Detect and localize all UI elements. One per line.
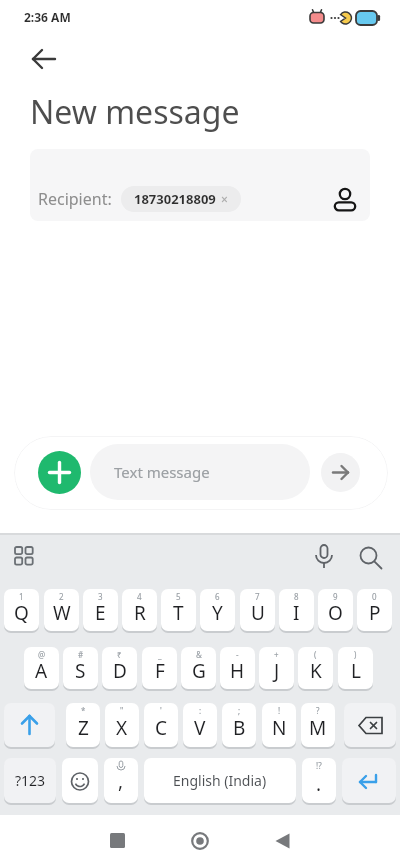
staticText: ! (278, 705, 281, 716)
button[interactable]: " (105, 703, 139, 749)
staticText: C (155, 715, 168, 741)
staticText: 9 (333, 591, 338, 602)
button[interactable] (358, 545, 384, 571)
staticText: 3 (98, 591, 103, 602)
staticText: O (328, 600, 343, 626)
button[interactable] (333, 185, 357, 212)
button[interactable]: : (183, 703, 217, 749)
staticText: ) (354, 649, 357, 660)
staticText: 6 (215, 591, 220, 602)
button[interactable]: & (181, 647, 216, 691)
button[interactable] (274, 833, 291, 849)
staticText: _ (158, 649, 162, 660)
button[interactable] (321, 453, 360, 492)
button[interactable]: # (63, 647, 98, 691)
staticText: * (81, 705, 86, 716)
button[interactable]: 8 (279, 589, 314, 633)
button[interactable]: + (259, 647, 294, 691)
staticText: G (192, 658, 206, 684)
button[interactable]: * (66, 703, 100, 749)
staticText: A (35, 658, 48, 684)
staticText: S (75, 658, 86, 684)
staticText: H (230, 658, 245, 684)
staticText: T (173, 600, 184, 626)
button[interactable]: 1 (4, 589, 39, 633)
staticText: X (116, 715, 128, 741)
staticText: ?123 (15, 771, 46, 790)
staticText: I (293, 600, 300, 626)
staticText: ₹ (117, 649, 122, 660)
button[interactable]: ) (338, 647, 373, 691)
staticText: # (78, 649, 84, 660)
staticText: ( (314, 649, 317, 660)
button[interactable]: ?123 (4, 758, 56, 805)
button[interactable] (24, 44, 64, 76)
button[interactable]: ! (262, 703, 296, 749)
button[interactable] (313, 544, 335, 571)
staticText: 0 (372, 591, 377, 602)
staticText: 4 (137, 591, 142, 602)
staticText: ; (238, 705, 241, 716)
button[interactable] (110, 833, 125, 848)
button[interactable] (191, 832, 209, 850)
button[interactable]: _ (142, 647, 177, 691)
button[interactable]: ; (222, 703, 256, 749)
staticText: , (118, 768, 124, 794)
staticText: E (95, 600, 106, 626)
button[interactable]: @ (24, 647, 59, 691)
staticText: M (309, 715, 327, 741)
staticText: R (134, 600, 146, 626)
staticText: Q (14, 600, 29, 626)
staticText: Recipient: (38, 188, 112, 210)
staticText: P (369, 600, 381, 626)
staticText: V (194, 715, 206, 741)
staticText: + (274, 649, 279, 660)
button[interactable]: ₹ (102, 647, 137, 691)
staticText: 18730218809 (134, 190, 216, 208)
staticText: !? (316, 760, 322, 771)
staticText: B (233, 715, 246, 741)
staticText: K (310, 658, 322, 684)
button[interactable]: 0 (357, 589, 392, 633)
button[interactable]: 5 (161, 589, 196, 633)
staticText: - (236, 649, 239, 660)
button[interactable]: , (104, 758, 138, 805)
button[interactable] (62, 758, 98, 805)
staticText: 2:36 AM (24, 9, 71, 25)
staticText: ' (160, 705, 162, 716)
staticText: 5 (176, 591, 181, 602)
button[interactable] (14, 546, 34, 566)
button[interactable]: 18730218809 (121, 186, 241, 212)
staticText: 8 (294, 591, 299, 602)
button[interactable] (4, 703, 55, 749)
button[interactable] (344, 703, 396, 749)
staticText: U (251, 600, 265, 626)
button[interactable]: ' (144, 703, 178, 749)
staticText: W (53, 600, 71, 626)
button[interactable]: 6 (200, 589, 235, 633)
staticText: 7 (255, 591, 260, 602)
button[interactable]: !? (302, 758, 336, 805)
button[interactable]: 7 (240, 589, 275, 633)
button[interactable] (38, 451, 81, 494)
staticText: J (274, 658, 280, 684)
button[interactable]: Text message (90, 444, 310, 500)
button[interactable]: 9 (318, 589, 353, 633)
button[interactable]: English (India) (144, 758, 296, 805)
button[interactable]: ( (298, 647, 333, 691)
staticText: Y (212, 600, 223, 626)
button[interactable]: ? (301, 703, 335, 749)
staticText: F (155, 658, 165, 684)
staticText: Z (78, 715, 89, 741)
staticText: L (351, 658, 361, 684)
button[interactable]: 4 (122, 589, 157, 633)
staticText: 2 (59, 591, 64, 602)
button[interactable]: - (220, 647, 255, 691)
button[interactable]: 2 (44, 589, 79, 633)
button[interactable]: 3 (83, 589, 118, 633)
staticText: ? (316, 705, 320, 716)
staticText: & (196, 649, 202, 660)
staticText: . (316, 771, 322, 797)
staticText: English (India) (173, 771, 267, 790)
button[interactable] (342, 758, 396, 805)
